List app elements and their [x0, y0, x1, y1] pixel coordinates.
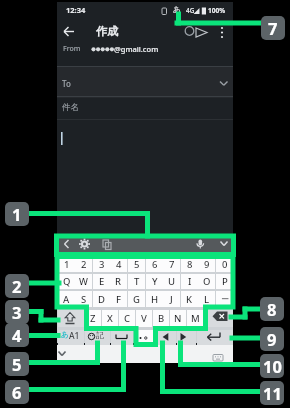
- button[interactable]: C: [119, 310, 135, 327]
- button[interactable]: T: [128, 274, 145, 289]
- button[interactable]: 0: [216, 256, 233, 272]
- button[interactable]: J: [163, 291, 180, 307]
- staticText: G: [133, 293, 140, 306]
- button[interactable]: 3: [5, 300, 29, 324]
- button[interactable]: 4: [110, 256, 127, 272]
- staticText: M: [191, 312, 200, 325]
- staticText: D: [98, 293, 105, 306]
- button[interactable]: 5: [5, 352, 29, 376]
- button[interactable]: [205, 310, 233, 327]
- button[interactable]: [216, 237, 230, 251]
- staticText: 0: [222, 258, 228, 271]
- button[interactable]: [196, 24, 210, 39]
- button[interactable]: Q: [58, 274, 75, 289]
- button[interactable]: [58, 330, 84, 345]
- button[interactable]: 7: [261, 16, 285, 40]
- button[interactable]: 10: [260, 354, 284, 378]
- button[interactable]: 6: [146, 256, 163, 272]
- button[interactable]: R: [110, 274, 127, 289]
- button[interactable]: 8: [181, 256, 198, 272]
- button[interactable]: [111, 330, 133, 345]
- staticText: P: [222, 275, 228, 288]
- button[interactable]: N: [170, 310, 186, 327]
- button[interactable]: [210, 74, 230, 92]
- staticText: B: [158, 312, 165, 325]
- button[interactable]: [177, 330, 196, 345]
- button[interactable]: O: [198, 274, 215, 289]
- staticText: U: [168, 275, 176, 288]
- staticText: 4: [116, 258, 122, 271]
- staticText: To: [62, 78, 71, 89]
- button[interactable]: Y: [146, 274, 163, 289]
- button[interactable]: L: [198, 291, 215, 307]
- button[interactable]: 1: [58, 256, 75, 272]
- staticText: O: [203, 275, 211, 288]
- button[interactable]: Z: [85, 310, 101, 327]
- button[interactable]: A: [58, 291, 75, 307]
- button[interactable]: D: [93, 291, 110, 307]
- button[interactable]: [197, 330, 233, 345]
- staticText: 9: [204, 258, 210, 271]
- button[interactable]: S: [75, 291, 92, 307]
- staticText: 4G: [186, 6, 195, 15]
- button[interactable]: ー: [216, 291, 233, 307]
- button[interactable]: P: [216, 274, 233, 289]
- button[interactable]: 6: [5, 380, 29, 404]
- staticText: 7: [169, 258, 175, 271]
- button[interactable]: [211, 351, 225, 363]
- button[interactable]: V: [136, 310, 152, 327]
- button[interactable]: E: [93, 274, 110, 289]
- button[interactable]: 2: [75, 256, 92, 272]
- button[interactable]: [157, 330, 176, 345]
- button[interactable]: 9: [198, 256, 215, 272]
- staticText: 作成: [96, 24, 118, 38]
- button[interactable]: 9: [260, 327, 284, 351]
- button[interactable]: K: [181, 291, 198, 307]
- button[interactable]: 8: [260, 297, 284, 321]
- button[interactable]: G: [128, 291, 145, 307]
- staticText: From: [63, 44, 81, 54]
- staticText: X: [107, 312, 113, 325]
- staticText: I: [188, 275, 192, 288]
- button[interactable]: [193, 237, 207, 251]
- staticText: A1: [69, 330, 80, 342]
- staticText: 7: [268, 17, 278, 39]
- button[interactable]: B: [153, 310, 169, 327]
- button[interactable]: [134, 330, 156, 345]
- button[interactable]: [60, 237, 73, 251]
- staticText: Y: [152, 275, 158, 288]
- staticText: Z: [90, 312, 96, 325]
- staticText: 5: [134, 258, 140, 271]
- button[interactable]: [85, 330, 110, 345]
- button[interactable]: [77, 237, 91, 251]
- button[interactable]: F: [110, 291, 127, 307]
- button[interactable]: 2: [5, 274, 29, 298]
- button[interactable]: 3: [93, 256, 110, 272]
- button[interactable]: H: [146, 291, 163, 307]
- button[interactable]: [215, 24, 228, 39]
- button[interactable]: W: [75, 274, 92, 289]
- button[interactable]: [56, 347, 68, 360]
- button[interactable]: 5: [128, 256, 145, 272]
- button[interactable]: 7: [163, 256, 180, 272]
- staticText: 2: [12, 275, 22, 297]
- button[interactable]: 1: [5, 202, 29, 226]
- staticText: C: [124, 312, 131, 325]
- staticText: E: [99, 275, 105, 288]
- button[interactable]: [99, 237, 113, 251]
- staticText: 5: [12, 353, 22, 375]
- staticText: 100%: [208, 6, 226, 15]
- staticText: 6: [12, 381, 22, 403]
- staticText: 9: [267, 328, 277, 350]
- button[interactable]: [58, 310, 84, 327]
- staticText: N: [174, 312, 182, 325]
- button[interactable]: [60, 24, 78, 40]
- button[interactable]: 11: [260, 381, 284, 405]
- button[interactable]: U: [163, 274, 180, 289]
- button[interactable]: X: [102, 310, 118, 327]
- button[interactable]: [57, 67, 233, 98]
- button[interactable]: M: [187, 310, 203, 327]
- button[interactable]: [181, 24, 195, 39]
- button[interactable]: I: [181, 274, 198, 289]
- button[interactable]: 4: [5, 323, 29, 347]
